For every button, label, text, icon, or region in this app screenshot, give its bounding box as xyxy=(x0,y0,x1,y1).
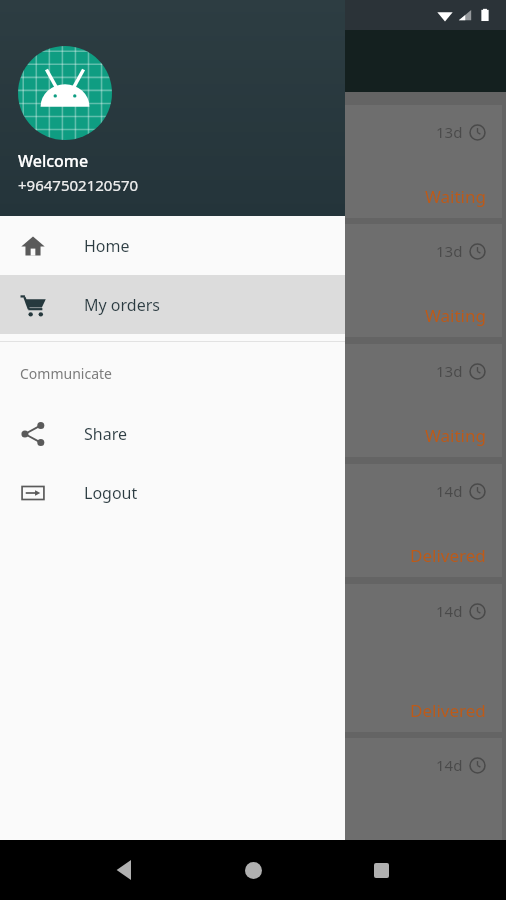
button[interactable]: Recent apps xyxy=(353,842,409,898)
button[interactable]: 14d xyxy=(6,738,502,848)
staticText: Waiting xyxy=(425,304,486,327)
staticText: Waiting xyxy=(425,185,486,208)
staticText: Home xyxy=(84,235,130,257)
button[interactable]: 13d xyxy=(6,105,502,218)
staticText: 14d xyxy=(436,755,463,775)
button[interactable]: 13d xyxy=(6,224,502,337)
button[interactable]: 14d xyxy=(6,464,502,577)
staticText: Delivered xyxy=(410,699,486,722)
staticText: +9647502120570 xyxy=(18,175,139,195)
staticText: Waiting xyxy=(425,424,486,447)
staticText: 13d xyxy=(436,122,463,142)
staticText: 13d xyxy=(436,361,463,381)
staticText: Share xyxy=(84,423,127,445)
staticText: Delivered xyxy=(410,544,486,567)
button[interactable]: Home xyxy=(225,842,281,898)
button[interactable]: Logout xyxy=(0,463,345,522)
staticText: 14d xyxy=(436,481,463,501)
staticText: Welcome xyxy=(18,150,89,172)
staticText: 14d xyxy=(436,601,463,621)
staticText: Logout xyxy=(84,482,138,504)
button[interactable]: 14d xyxy=(6,584,502,732)
button[interactable]: Home xyxy=(0,216,345,275)
staticText: 13d xyxy=(436,241,463,261)
button[interactable]: 13d xyxy=(6,344,502,457)
staticText: My orders xyxy=(84,294,160,316)
button[interactable]: My orders xyxy=(0,275,345,334)
button[interactable]: Back xyxy=(97,842,153,898)
staticText: Communicate xyxy=(20,364,112,383)
button[interactable]: Share xyxy=(0,404,345,463)
